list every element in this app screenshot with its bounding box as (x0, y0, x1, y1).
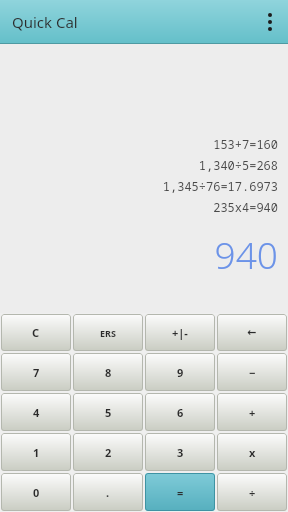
staticText: = (177, 485, 184, 500)
button[interactable]: 3 (145, 433, 215, 471)
staticText: 8 (105, 365, 112, 380)
staticText: + (249, 405, 256, 420)
staticText: 1 (33, 445, 40, 460)
staticText: 5 (105, 405, 112, 420)
staticText: ÷ (249, 485, 256, 500)
button[interactable]: = (145, 473, 215, 511)
button[interactable]: 9 (145, 353, 215, 391)
button[interactable]: ÷ (217, 473, 287, 511)
staticText: 9 (177, 365, 184, 380)
staticText: 4 (33, 405, 40, 420)
staticText: 0 (33, 485, 40, 500)
button[interactable]: 7 (1, 353, 71, 391)
button[interactable]: Backspace (217, 314, 287, 351)
staticText: 1,340÷5=268 (0, 157, 278, 173)
button[interactable]: 0 (1, 473, 71, 511)
button[interactable]: ERS (73, 314, 143, 351)
button[interactable]: 1 (1, 433, 71, 471)
button[interactable]: +|- (145, 314, 215, 351)
button[interactable]: 4 (1, 393, 71, 431)
staticText: 2 (105, 445, 112, 460)
staticText: 6 (177, 405, 184, 420)
button[interactable]: C (1, 314, 71, 351)
button[interactable]: 5 (73, 393, 143, 431)
staticText: ERS (100, 327, 116, 339)
button[interactable]: More options (252, 0, 288, 44)
button[interactable]: 8 (73, 353, 143, 391)
staticText: 153+7=160 (0, 136, 278, 152)
staticText: 940 (0, 229, 278, 279)
staticText: − (249, 365, 256, 380)
staticText: ← (247, 326, 257, 339)
staticText: +|- (172, 325, 188, 340)
staticText: Quick Cal (12, 12, 78, 32)
staticText: x (249, 445, 256, 460)
button[interactable]: 2 (73, 433, 143, 471)
staticText: 1,345÷76=17.6973 (0, 178, 278, 194)
button[interactable]: + (217, 393, 287, 431)
staticText: C (32, 325, 40, 340)
staticText: 7 (33, 365, 40, 380)
staticText: . (106, 485, 110, 500)
button[interactable]: − (217, 353, 287, 391)
button[interactable]: 6 (145, 393, 215, 431)
staticText: 3 (177, 445, 184, 460)
staticText: 235x4=940 (0, 199, 278, 215)
button[interactable]: x (217, 433, 287, 471)
button[interactable]: . (73, 473, 143, 511)
